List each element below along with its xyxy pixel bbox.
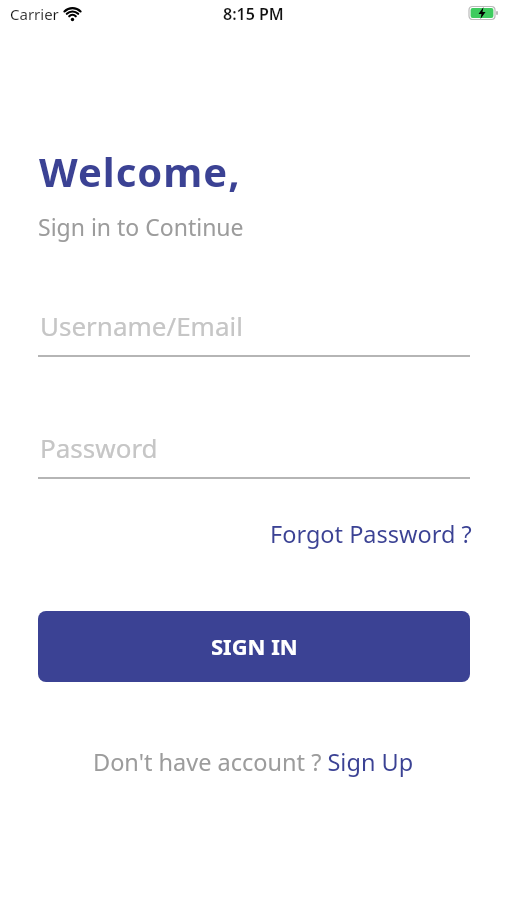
staticText: Sign in to Continue [38,211,244,242]
staticText: Forgot Password ? [270,518,472,550]
button[interactable] [38,422,470,479]
staticText: Don't have account ? Sign Up [93,746,414,778]
staticText: Username/Email [40,308,243,343]
staticText: 8:15 PM [223,3,284,25]
button[interactable]: Forgot Password ? [270,518,472,550]
button[interactable] [38,300,470,357]
staticText: Carrier [10,4,59,24]
button[interactable]: Don't have account ? Sign Up [0,746,507,778]
button[interactable]: SIGN IN [38,611,470,682]
staticText: SIGN IN [211,631,298,661]
staticText: Welcome, [39,144,241,198]
staticText: Password [40,430,158,465]
